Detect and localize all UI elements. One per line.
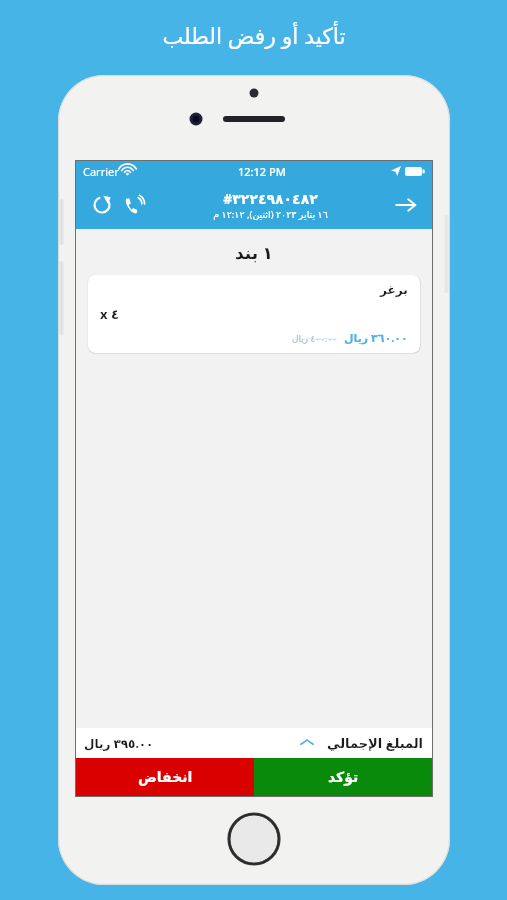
button[interactable]: برغر [88, 275, 420, 353]
staticText: ٣٩٥.٠٠ ريال [84, 735, 154, 751]
staticText: برغر [380, 283, 408, 297]
staticText: #٣٢٢٤٩٨٠٤٨٢ [223, 189, 318, 208]
staticText: x ٤ [100, 305, 119, 323]
button[interactable]: انخفاض [76, 758, 254, 796]
staticText: ٣٦٠.٠٠ ريال [344, 330, 408, 345]
button[interactable]: ٣٩٥.٠٠ ريال [76, 728, 432, 758]
button[interactable]: Refresh [86, 189, 118, 221]
staticText: تأكيد أو رفض الطلب [162, 20, 346, 50]
button[interactable]: Call [118, 189, 150, 221]
staticText: انخفاض [138, 769, 193, 785]
staticText: Carrier [83, 164, 119, 179]
staticText: تؤكد [328, 769, 359, 785]
staticText: ١ بند [235, 241, 273, 264]
button[interactable]: Next [390, 189, 422, 221]
staticText: ٤٠٠.٠٠ ريال [292, 332, 338, 344]
staticText: المبلغ الإجمالي [327, 734, 424, 752]
staticText: ١٦ يناير ٢٠٢٣ (اثنين), ١٢:١٢ م [213, 208, 328, 221]
button[interactable]: تؤكد [254, 758, 432, 796]
staticText: 12:12 PM [238, 164, 286, 179]
